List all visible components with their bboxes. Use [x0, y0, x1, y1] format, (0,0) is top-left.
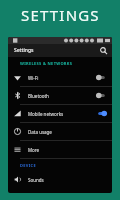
- button[interactable]: Bluetooth toggle: [96, 92, 107, 99]
- staticText: Sounds: [28, 177, 107, 183]
- button[interactable]: Settings: [8, 44, 112, 57]
- button[interactable]: Data usage: [8, 123, 112, 140]
- button[interactable]: Sounds: [8, 171, 112, 188]
- staticText: DEVICE: [20, 163, 36, 168]
- staticText: WIRELESS & NETWORKS: [20, 61, 73, 66]
- button[interactable]: Mobile networks: [8, 105, 112, 122]
- button[interactable]: More: [8, 141, 112, 158]
- staticText: Wi-Fi: [28, 75, 96, 81]
- button[interactable]: Wi-Fi toggle: [96, 74, 107, 81]
- staticText: Data usage: [28, 129, 107, 135]
- staticText: Bluetooth: [28, 93, 96, 99]
- staticText: More: [28, 147, 107, 153]
- staticText: Mobile networks: [28, 111, 96, 117]
- button[interactable]: Search: [99, 46, 108, 55]
- staticText: Settings: [14, 47, 34, 54]
- button[interactable]: Mobile networks toggle: [96, 110, 107, 117]
- button[interactable]: Wi-Fi: [8, 69, 112, 86]
- button[interactable]: Bluetooth: [8, 87, 112, 104]
- staticText: SETTINGS: [21, 5, 100, 25]
